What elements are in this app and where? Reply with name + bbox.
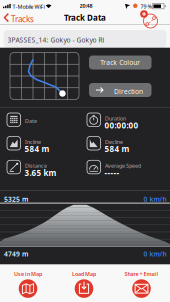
- staticText: 0 km/h: [143, 195, 166, 204]
- staticText: 79 %: [140, 3, 151, 10]
- button[interactable]: Add Track: [141, 10, 159, 29]
- staticText: Distance: [25, 162, 47, 169]
- staticText: 0 km/h: [143, 250, 166, 258]
- staticText: Duration: [105, 115, 126, 122]
- staticText: Track Data: [64, 12, 106, 23]
- button[interactable]: Use in Map: [0, 264, 56, 302]
- button[interactable]: Load Map: [56, 264, 112, 302]
- staticText: Load Map: [72, 270, 96, 277]
- staticText: 3PASSES_14: Gokyo - Gokyo Ri: [7, 36, 104, 44]
- staticText: Share + Email: [124, 270, 158, 277]
- staticText: 584 m: [104, 144, 129, 154]
- staticText: 5325 m: [4, 195, 28, 204]
- staticText: Average Speed: [105, 162, 141, 169]
- button[interactable]: Track Colour: [89, 55, 151, 69]
- staticText: Decline: [105, 138, 123, 145]
- button[interactable]: 3PASSES_14: Gokyo - Gokyo Ri: [3, 30, 166, 48]
- staticText: 4749 m: [4, 250, 28, 258]
- button[interactable]: Share + Email: [113, 264, 169, 302]
- staticText: 3.65 km: [24, 167, 56, 178]
- staticText: 00:00:00: [104, 120, 138, 131]
- staticText: 584 m: [24, 144, 49, 154]
- staticText: 20:48: [79, 2, 92, 9]
- staticText: Direction: [114, 87, 143, 96]
- staticText: Track Colour: [100, 58, 140, 67]
- staticText: Tracks: [11, 14, 34, 24]
- staticText: Use in Map: [14, 270, 42, 277]
- staticText: -----: [104, 167, 119, 178]
- button[interactable]: Tracks: [0, 11, 38, 25]
- staticText: Date: [25, 117, 37, 125]
- staticText: T-Mobile WiFi: [12, 3, 44, 10]
- button[interactable]: Direction: [89, 83, 151, 97]
- staticText: Incline: [25, 138, 41, 145]
